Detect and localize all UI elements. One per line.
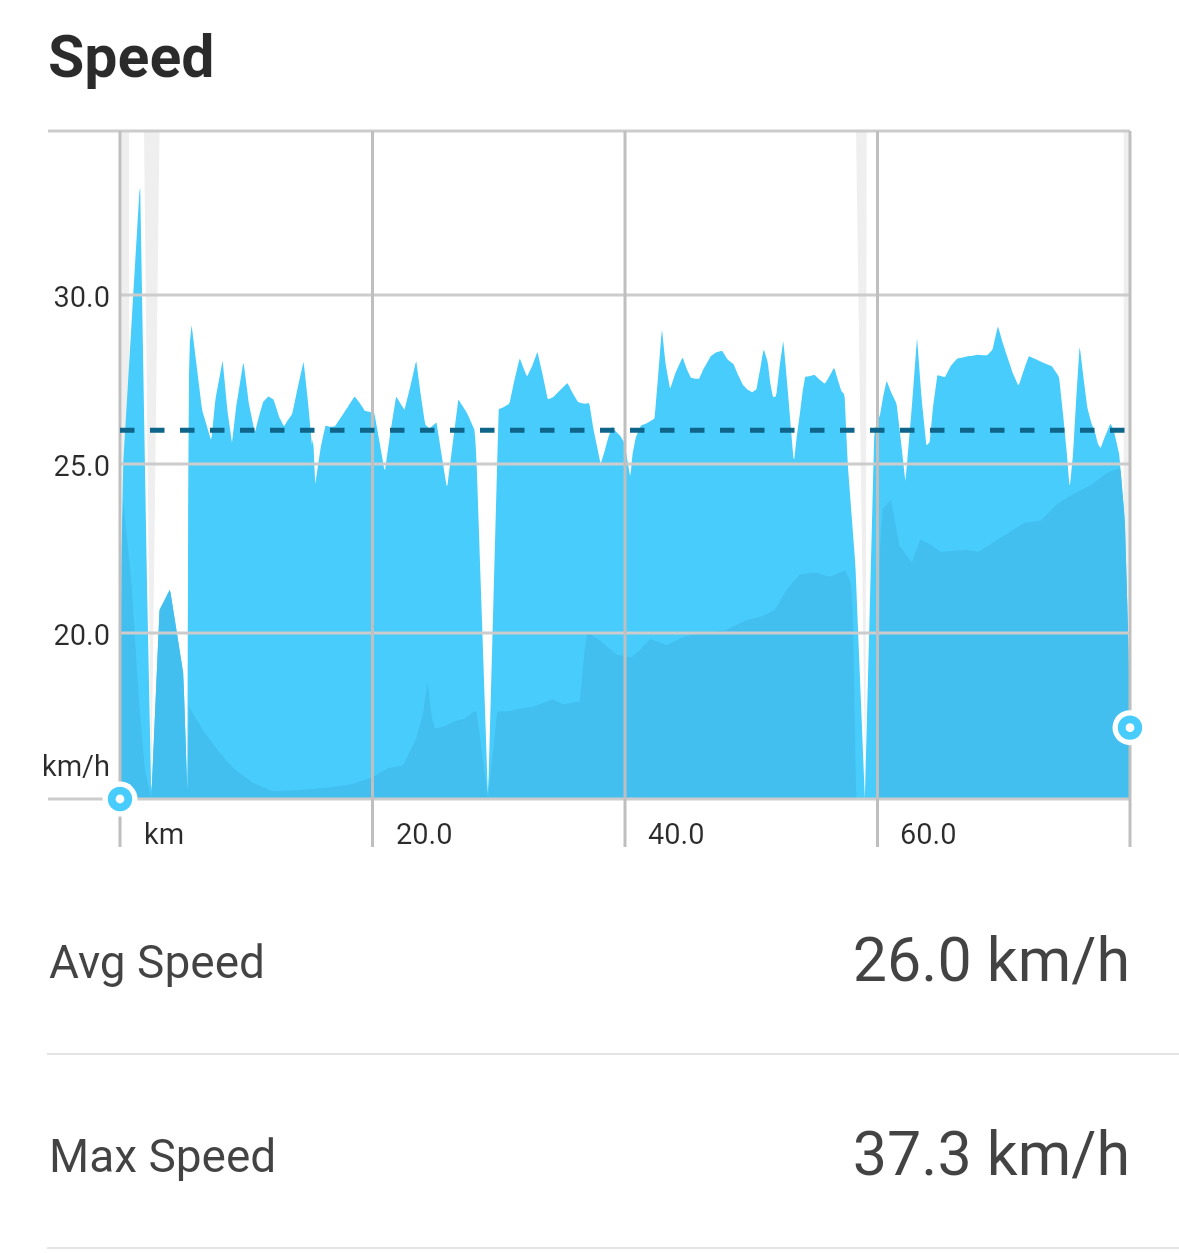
staticText: 60.0 <box>900 817 957 851</box>
staticText: 26.0 km/h <box>0 924 1130 995</box>
staticText: 40.0 <box>648 817 705 851</box>
staticText: Max Speed <box>49 1129 277 1183</box>
staticText: Avg Speed <box>49 935 265 989</box>
staticText: 37.3 km/h <box>0 1118 1130 1189</box>
staticText: 20.0 <box>396 817 453 851</box>
button[interactable]: Max Speed <box>0 1055 1179 1249</box>
staticText: 20.0 <box>0 618 110 652</box>
staticText: km <box>144 817 185 851</box>
staticText: 25.0 <box>0 449 110 483</box>
staticText: Speed <box>48 22 215 91</box>
staticText: km/h <box>0 749 110 783</box>
button[interactable]: Avg Speed <box>0 861 1179 1055</box>
staticText: 30.0 <box>0 280 110 314</box>
